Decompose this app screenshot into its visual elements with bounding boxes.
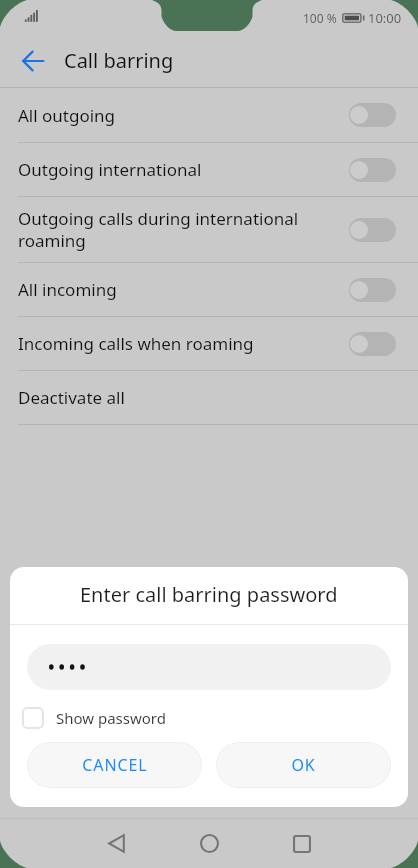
staticText: 10:00 bbox=[368, 9, 402, 27]
button[interactable]: All outgoing bbox=[0, 88, 418, 142]
staticText: 100 % bbox=[303, 10, 337, 26]
button[interactable]: All incoming bbox=[0, 263, 418, 316]
button[interactable]: Show password bbox=[22, 707, 391, 729]
button[interactable]: Outgoing calls during international roam… bbox=[0, 197, 418, 262]
staticText: Show password bbox=[56, 708, 166, 728]
button[interactable]: Recent apps bbox=[272, 819, 332, 868]
staticText: OK bbox=[291, 754, 316, 776]
staticText: Call barring bbox=[64, 47, 174, 74]
button[interactable]: Navigate up bbox=[9, 37, 57, 85]
staticText: All incoming bbox=[18, 278, 335, 301]
button[interactable]: Deactivate all bbox=[0, 371, 418, 424]
staticText: All outgoing bbox=[18, 104, 335, 127]
staticText: Deactivate all bbox=[18, 386, 125, 409]
staticText: CANCEL bbox=[82, 754, 148, 776]
staticText: Enter call barring password bbox=[80, 581, 338, 608]
button[interactable]: OK bbox=[216, 742, 391, 788]
staticText: Incoming calls when roaming bbox=[18, 332, 335, 355]
staticText: Outgoing calls during international roam… bbox=[18, 207, 335, 252]
button[interactable]: Incoming calls when roaming bbox=[0, 317, 418, 370]
button[interactable] bbox=[27, 644, 391, 690]
button[interactable]: CANCEL bbox=[27, 742, 202, 788]
staticText: Outgoing international bbox=[18, 158, 335, 181]
button[interactable]: Outgoing international bbox=[0, 143, 418, 196]
button[interactable]: Home bbox=[179, 819, 239, 868]
button[interactable]: Back bbox=[86, 819, 146, 868]
